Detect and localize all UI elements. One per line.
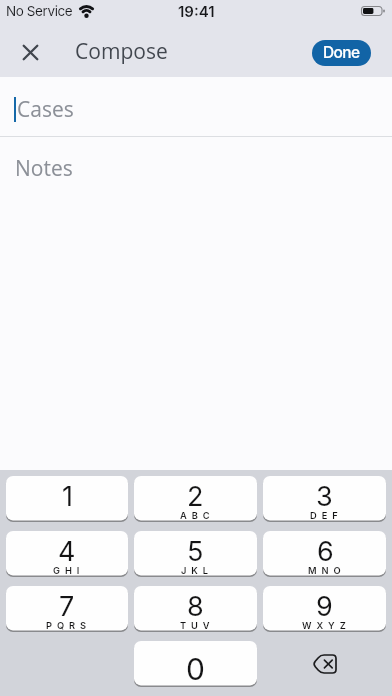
button[interactable]: 0 bbox=[134, 641, 257, 687]
button[interactable] bbox=[263, 641, 386, 687]
button[interactable]: 8 bbox=[134, 586, 257, 632]
button[interactable]: 2 bbox=[134, 476, 257, 522]
button[interactable]: 7 bbox=[6, 586, 128, 632]
button[interactable]: Done bbox=[312, 40, 371, 66]
staticText: 0 bbox=[186, 651, 205, 687]
staticText: 6 bbox=[317, 535, 334, 568]
button[interactable]: Cases bbox=[0, 77, 392, 136]
staticText: 4 bbox=[58, 535, 76, 568]
button[interactable]: 6 bbox=[263, 531, 386, 577]
staticText: 19:41 bbox=[178, 2, 215, 20]
staticText: A B C bbox=[180, 510, 211, 521]
staticText: Done bbox=[323, 43, 360, 62]
staticText: 8 bbox=[187, 590, 204, 623]
staticText: 1 bbox=[62, 480, 73, 513]
staticText: 5 bbox=[187, 535, 204, 568]
staticText: G H I bbox=[53, 565, 81, 576]
staticText: 7 bbox=[59, 590, 75, 623]
staticText: T U V bbox=[180, 620, 211, 631]
staticText: 9 bbox=[316, 590, 333, 623]
button[interactable]: Notes bbox=[0, 137, 392, 470]
staticText: P Q R S bbox=[46, 620, 88, 631]
button[interactable] bbox=[12, 34, 48, 70]
staticText: Cases bbox=[17, 95, 74, 124]
staticText: Compose bbox=[75, 37, 168, 66]
staticText: W X Y Z bbox=[302, 620, 347, 631]
staticText: M N O bbox=[308, 565, 342, 576]
staticText: Notes bbox=[15, 154, 73, 183]
staticText: D E F bbox=[310, 510, 339, 521]
staticText: No Service bbox=[6, 3, 73, 19]
button[interactable]: 3 bbox=[263, 476, 386, 522]
button[interactable]: 9 bbox=[263, 586, 386, 632]
button[interactable]: 4 bbox=[6, 531, 128, 577]
staticText: 3 bbox=[316, 480, 333, 513]
button[interactable]: 1 bbox=[6, 476, 128, 522]
staticText: J K L bbox=[181, 565, 210, 576]
staticText: 2 bbox=[187, 480, 204, 513]
button[interactable]: 5 bbox=[134, 531, 257, 577]
